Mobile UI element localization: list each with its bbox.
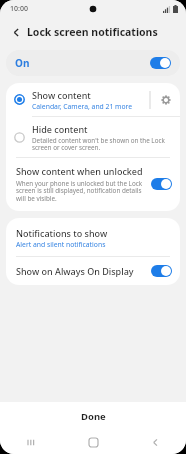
button[interactable]: Toggle bbox=[151, 265, 172, 277]
staticText: Detailed content won't be shown on the L… bbox=[32, 136, 170, 152]
staticText: On bbox=[15, 56, 30, 70]
button[interactable]: Back bbox=[8, 24, 24, 40]
button[interactable]: Toggle bbox=[150, 57, 171, 69]
staticText: Hide content bbox=[32, 123, 88, 135]
button[interactable]: Recents bbox=[0, 430, 62, 454]
button[interactable]: Notifications to show bbox=[6, 218, 180, 256]
staticText: Lock screen notifications bbox=[27, 25, 158, 39]
staticText: Show on Always On Display bbox=[16, 265, 151, 277]
button[interactable]: Show content when unlocked bbox=[6, 158, 180, 211]
button[interactable]: Toggle bbox=[151, 178, 172, 190]
button[interactable]: Back bbox=[124, 430, 186, 454]
button[interactable]: Settings bbox=[151, 83, 180, 116]
staticText: 10:00 bbox=[10, 4, 28, 14]
staticText: Done bbox=[81, 410, 106, 423]
button[interactable]: Home bbox=[62, 430, 124, 454]
staticText: Show content when unlocked bbox=[16, 165, 143, 177]
button[interactable]: Hide content bbox=[6, 117, 180, 157]
button[interactable]: Show content bbox=[6, 83, 180, 116]
button[interactable]: Show on Always On Display bbox=[6, 257, 180, 285]
staticText: Show content bbox=[32, 89, 91, 101]
staticText: When your phone is unlocked but the Lock… bbox=[16, 179, 145, 203]
staticText: Alert and silent notifications bbox=[16, 240, 106, 249]
button[interactable]: Done bbox=[0, 402, 186, 430]
button[interactable]: On bbox=[6, 50, 180, 76]
staticText: Notifications to show bbox=[16, 227, 108, 239]
staticText: Calendar, Camera, and 21 more bbox=[32, 102, 133, 111]
